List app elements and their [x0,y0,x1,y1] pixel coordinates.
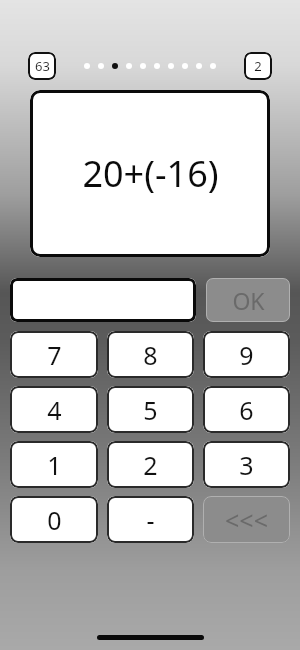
button[interactable]: - [107,496,194,543]
staticText: 7 [47,338,62,372]
button[interactable]: 3 [203,441,290,488]
staticText: OK [232,285,265,316]
staticText: 4 [47,393,62,427]
staticText: 2 [143,448,158,482]
button[interactable] [10,278,196,322]
button[interactable]: 2 [244,52,272,80]
button[interactable]: 6 [203,386,290,433]
button[interactable]: 63 [28,52,56,80]
staticText: 8 [143,338,158,372]
staticText: 2 [254,57,262,75]
button[interactable]: <<< [203,496,290,543]
staticText: - [146,503,155,537]
button[interactable]: 9 [203,331,290,378]
staticText: 0 [47,503,62,537]
staticText: <<< [225,503,268,537]
button[interactable]: 1 [10,441,98,488]
button[interactable]: 2 [107,441,194,488]
button[interactable]: 5 [107,386,194,433]
staticText: 1 [47,448,62,482]
button[interactable]: 4 [10,386,98,433]
staticText: 5 [143,393,158,427]
button[interactable]: OK [206,278,290,322]
staticText: 20+(-16) [82,149,219,198]
button[interactable]: 0 [10,496,98,543]
button[interactable]: 8 [107,331,194,378]
button[interactable]: 7 [10,331,98,378]
staticText: 9 [239,338,254,372]
staticText: 63 [35,57,50,75]
staticText: 3 [239,448,254,482]
staticText: 6 [239,393,254,427]
